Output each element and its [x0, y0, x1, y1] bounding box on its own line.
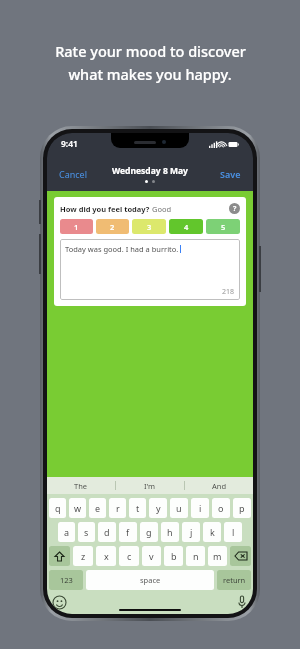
button[interactable]: Emoji [53, 596, 66, 609]
staticText: 9:41 [61, 138, 78, 150]
staticText: s [84, 526, 89, 538]
button[interactable]: The [47, 477, 115, 494]
staticText: m [213, 550, 222, 562]
staticText: Today was good. I had a burrito. [65, 244, 179, 254]
button[interactable]: u [170, 498, 188, 518]
button[interactable]: Cancel [56, 164, 91, 184]
button[interactable]: 2 [96, 219, 129, 234]
staticText: n [193, 550, 199, 562]
button[interactable]: t [129, 498, 146, 518]
staticText: 4 [184, 222, 189, 232]
staticText: space [140, 575, 161, 585]
button[interactable]: s [78, 522, 95, 542]
staticText: j [190, 526, 193, 538]
staticText: ? [233, 204, 237, 214]
button[interactable]: 4 [169, 219, 203, 234]
staticText: y [156, 502, 161, 514]
button[interactable]: 5 [206, 219, 240, 234]
button[interactable]: k [203, 522, 221, 542]
staticText: Good [152, 204, 172, 214]
staticText: v [149, 550, 154, 562]
staticText: Cancel [59, 168, 88, 180]
button[interactable]: Save [217, 164, 244, 184]
staticText: b [171, 550, 177, 562]
staticText: And [212, 481, 227, 491]
button[interactable]: Shift [49, 546, 70, 566]
button[interactable]: And [185, 477, 253, 494]
button[interactable]: 3 [132, 219, 166, 234]
button[interactable]: e [89, 498, 106, 518]
staticText: d [104, 526, 110, 538]
staticText: 5 [221, 222, 226, 232]
button[interactable]: y [149, 498, 167, 518]
button[interactable]: m [208, 546, 227, 566]
button[interactable]: g [140, 522, 158, 542]
staticText: p [239, 502, 245, 514]
staticText: Wednesday 8 May [112, 165, 188, 177]
button[interactable]: h [161, 522, 179, 542]
button[interactable]: Dictation [238, 596, 246, 608]
staticText: k [210, 526, 215, 538]
button[interactable]: space [86, 570, 214, 590]
button[interactable]: q [49, 498, 66, 518]
button[interactable]: w [69, 498, 86, 518]
staticText: c [127, 550, 132, 562]
button[interactable]: Backspace [230, 546, 251, 566]
staticText: x [104, 550, 109, 562]
staticText: 1 [74, 222, 79, 232]
staticText: t [136, 502, 140, 514]
staticText: return [223, 575, 246, 585]
button[interactable]: o [212, 498, 230, 518]
button[interactable]: i [191, 498, 209, 518]
staticText: z [81, 550, 86, 562]
button[interactable]: Today was good. I had a burrito. [60, 239, 240, 300]
button[interactable]: return [217, 570, 251, 590]
button[interactable]: Help [229, 203, 240, 214]
staticText: r [116, 502, 120, 514]
staticText: q [55, 502, 61, 514]
staticText: The [74, 481, 88, 491]
button[interactable]: j [182, 522, 200, 542]
staticText: a [64, 526, 70, 538]
staticText: I'm [144, 481, 156, 491]
button[interactable]: x [96, 546, 116, 566]
staticText: 218 [222, 287, 235, 297]
staticText: How did you feel today? [60, 204, 152, 214]
button[interactable]: a [58, 522, 75, 542]
button[interactable]: l [224, 522, 242, 542]
button[interactable]: n [186, 546, 205, 566]
staticText: e [95, 502, 101, 514]
button[interactable]: f [119, 522, 137, 542]
staticText: g [146, 526, 152, 538]
staticText: o [218, 502, 224, 514]
button[interactable]: r [109, 498, 126, 518]
staticText: 3 [147, 222, 152, 232]
staticText: l [232, 526, 235, 538]
staticText: 2 [110, 222, 115, 232]
button[interactable]: 1 [60, 219, 93, 234]
staticText: 123 [60, 575, 73, 585]
button[interactable]: v [142, 546, 161, 566]
staticText: i [199, 502, 202, 514]
staticText: what makes you happy. [68, 64, 232, 84]
button[interactable]: I'm [116, 477, 184, 494]
button[interactable]: p [233, 498, 251, 518]
button[interactable]: 123 [49, 570, 83, 590]
button[interactable]: b [164, 546, 183, 566]
button[interactable]: d [98, 522, 116, 542]
staticText: u [176, 502, 182, 514]
button[interactable]: c [119, 546, 139, 566]
staticText: Rate your mood to discover [55, 41, 246, 61]
staticText: f [126, 526, 130, 538]
staticText: h [167, 526, 173, 538]
button[interactable]: z [73, 546, 93, 566]
staticText: Save [220, 168, 241, 180]
staticText: w [74, 502, 82, 514]
